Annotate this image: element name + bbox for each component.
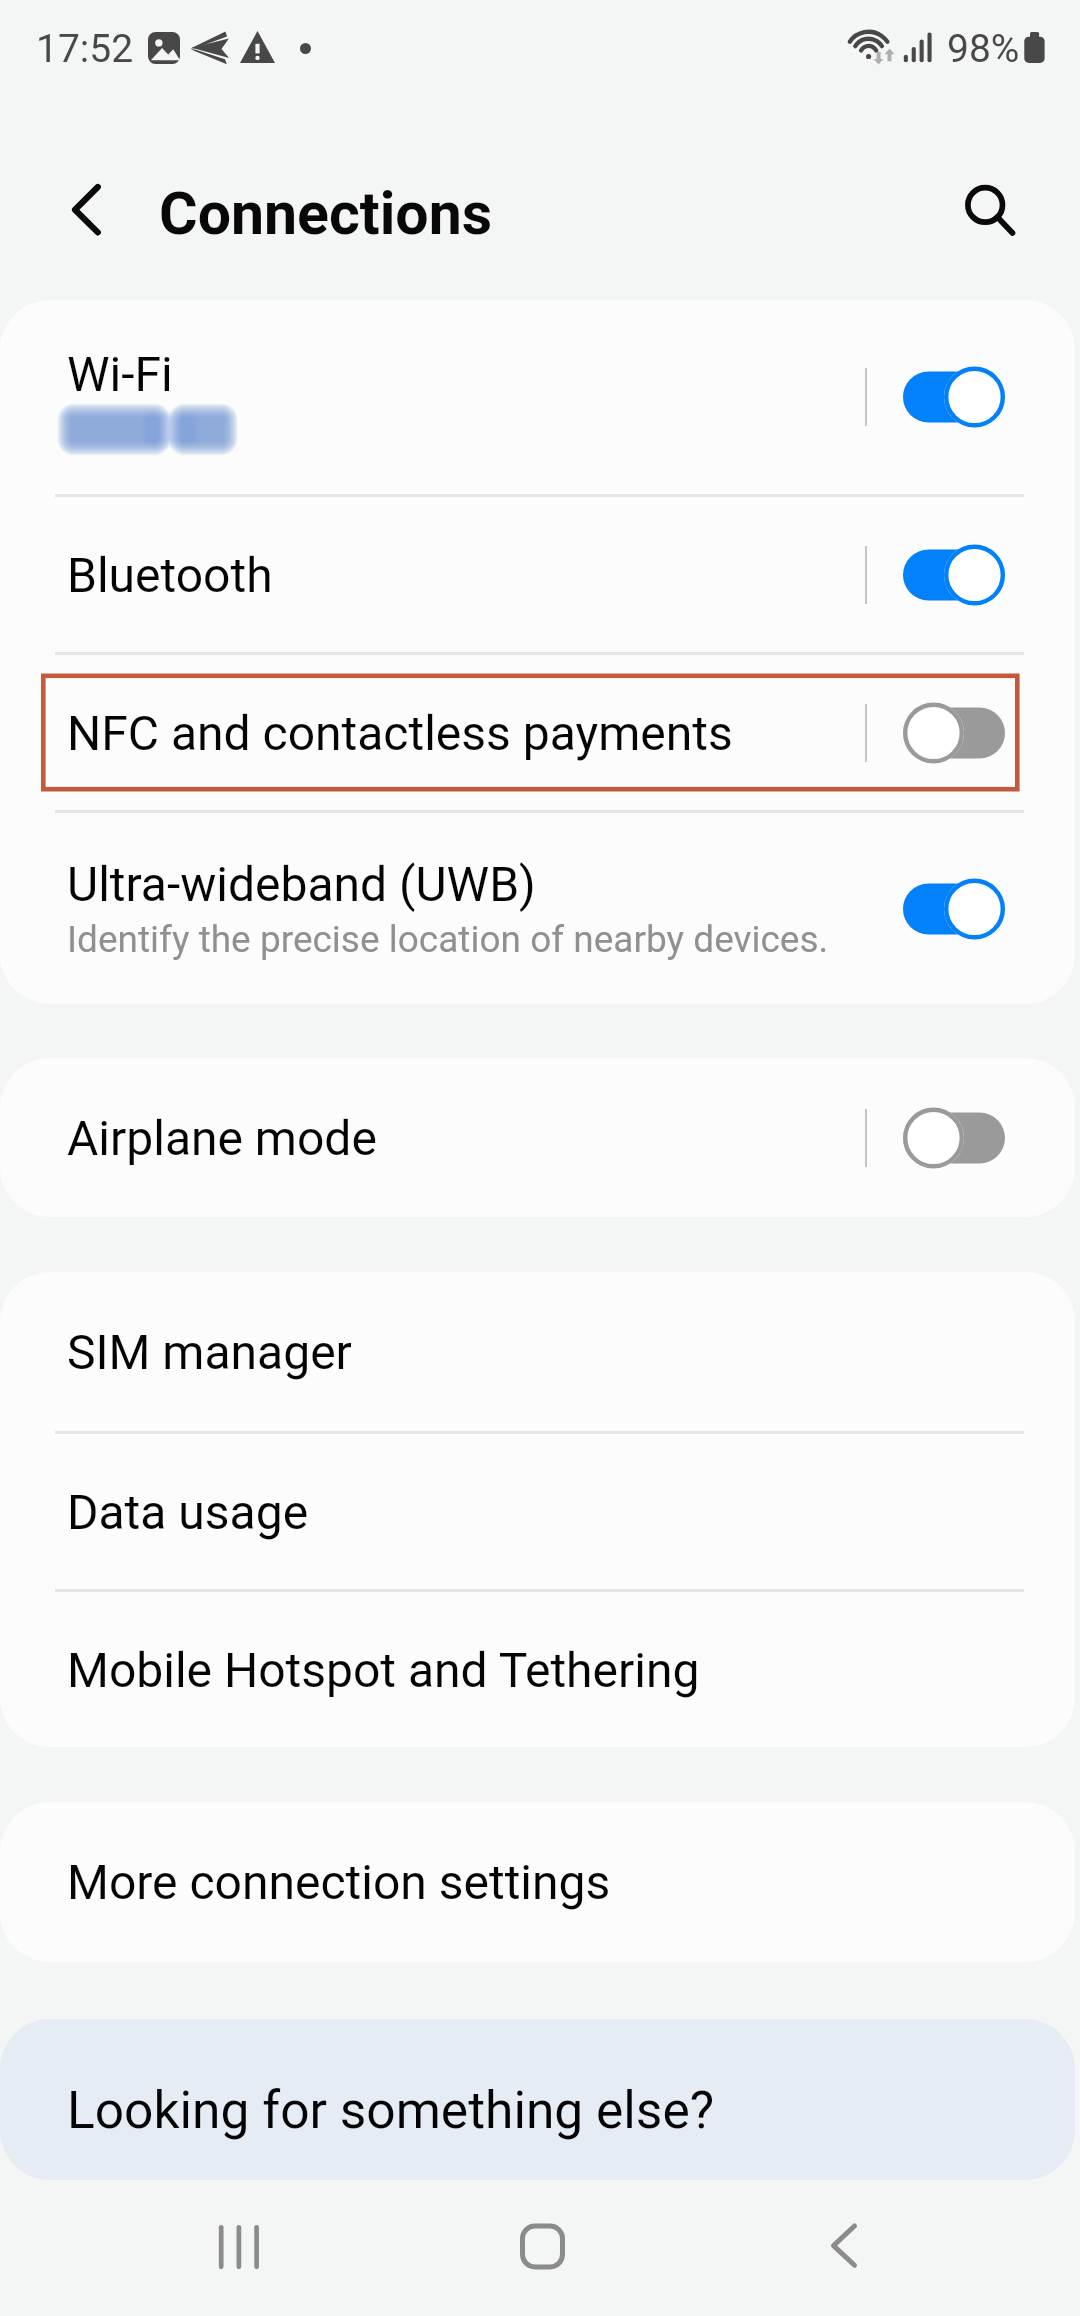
button[interactable]: Home (479, 2206, 599, 2286)
staticText: Looking for something else? (67, 2080, 715, 2140)
button[interactable]: Navigate up (50, 172, 126, 248)
button[interactable]: SIM manager (0, 1272, 1075, 1431)
button[interactable]: Bluetooth (0, 497, 1075, 652)
button[interactable]: Search (948, 170, 1020, 242)
button[interactable]: Mobile Hotspot and Tethering (0, 1592, 1075, 1747)
staticText: Wi-Fi (67, 346, 173, 402)
button[interactable]: Ultra-wideband (UWB) (0, 813, 1075, 1004)
staticText: Data usage (67, 1484, 309, 1540)
button[interactable]: Airplane mode (0, 1058, 1075, 1217)
button[interactable]: Back (782, 2206, 902, 2286)
button[interactable]: Wi-Fi (0, 300, 1075, 494)
staticText: Identify the precise location of nearby … (67, 918, 829, 961)
staticText: More connection settings (67, 1854, 611, 1910)
staticText: 17:52 (36, 26, 134, 72)
button[interactable]: Looking for something else? (0, 2019, 1075, 2180)
staticText: Airplane mode (67, 1110, 377, 1166)
button[interactable]: NFC and contactless payments (0, 655, 1075, 810)
staticText: Connections (159, 179, 493, 248)
staticText: Mobile Hotspot and Tethering (67, 1642, 700, 1698)
button[interactable]: More connection settings (0, 1802, 1075, 1962)
staticText: Bluetooth (67, 547, 273, 603)
staticText: 98% (947, 26, 1020, 72)
button[interactable]: Data usage (0, 1434, 1075, 1589)
button[interactable]: Recent apps (179, 2206, 299, 2286)
staticText: Ultra-wideband (UWB) (67, 856, 536, 912)
staticText: SIM manager (67, 1324, 352, 1380)
staticText: NFC and contactless payments (67, 705, 733, 761)
